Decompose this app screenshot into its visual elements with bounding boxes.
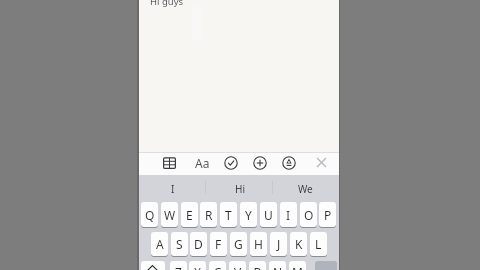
staticText: X [189, 264, 206, 270]
button[interactable]: A [151, 232, 168, 256]
button[interactable] [220, 152, 242, 173]
button[interactable] [141, 261, 165, 270]
staticText: B [249, 264, 266, 270]
button[interactable] [269, 261, 286, 270]
staticText: Q [145, 207, 155, 223]
staticText: P [324, 207, 332, 223]
staticText: Z [170, 264, 187, 270]
button[interactable] [158, 152, 180, 173]
button[interactable]: Hi [206, 176, 273, 201]
button[interactable]: G [230, 232, 247, 256]
staticText: N [269, 264, 286, 270]
staticText: G [234, 236, 243, 252]
button[interactable]: Aa [191, 152, 213, 173]
button[interactable]: We [272, 176, 339, 201]
staticText: J [277, 236, 281, 252]
button[interactable] [209, 261, 226, 270]
button[interactable] [249, 152, 271, 173]
staticText: U [264, 207, 273, 223]
button[interactable]: E [181, 202, 198, 227]
button[interactable] [289, 261, 306, 270]
button[interactable]: H [250, 232, 267, 256]
button[interactable] [189, 261, 206, 270]
staticText: E [186, 207, 193, 223]
button[interactable]: L [310, 232, 327, 256]
button[interactable] [170, 261, 187, 270]
button[interactable]: I [139, 176, 206, 201]
button[interactable]: D [190, 232, 207, 256]
button[interactable] [229, 261, 246, 270]
button[interactable] [249, 261, 266, 270]
button[interactable] [315, 261, 337, 270]
button[interactable]: Q [141, 202, 158, 227]
button[interactable] [310, 152, 332, 173]
staticText: K [295, 236, 303, 252]
button[interactable]: F [210, 232, 227, 256]
staticText: O [304, 207, 314, 223]
staticText: Hi [235, 182, 245, 196]
staticText: Aa [195, 155, 210, 171]
button[interactable]: O [300, 202, 317, 227]
button[interactable]: T [220, 202, 237, 227]
staticText: D [194, 236, 203, 252]
staticText: W [164, 207, 176, 223]
staticText: M [289, 264, 306, 270]
staticText: We [298, 182, 313, 196]
button[interactable]: W [161, 202, 178, 227]
staticText: T [225, 207, 232, 223]
button[interactable]: R [200, 202, 217, 227]
staticText: R [205, 207, 213, 223]
staticText: S [176, 236, 183, 252]
staticText: Hi guys [150, 0, 184, 8]
staticText: I [286, 207, 291, 223]
button[interactable]: Y [240, 202, 257, 227]
staticText: H [254, 236, 263, 252]
button[interactable]: S [171, 232, 188, 256]
staticText: F [215, 236, 222, 252]
staticText: L [315, 236, 322, 252]
staticText: C [209, 264, 226, 270]
staticText: I [171, 182, 175, 196]
button[interactable]: P [319, 202, 336, 227]
staticText: Y [245, 207, 252, 223]
button[interactable]: I [280, 202, 297, 227]
button[interactable]: J [270, 232, 287, 256]
staticText: A [156, 236, 164, 252]
button[interactable]: K [290, 232, 307, 256]
button[interactable]: U [260, 202, 277, 227]
staticText: V [229, 264, 246, 270]
button[interactable] [278, 152, 300, 173]
